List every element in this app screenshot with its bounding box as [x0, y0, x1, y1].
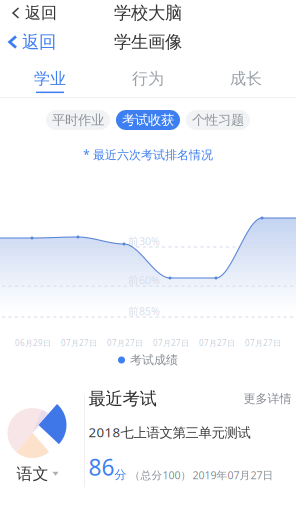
staticText: 07月27日 — [61, 338, 97, 348]
staticText: 学校大脑 — [114, 2, 182, 24]
staticText: 成长 — [230, 69, 262, 89]
staticText: * 最近六次考试排名情况 — [83, 146, 213, 162]
staticText: 平时作业 — [52, 112, 104, 128]
button[interactable]: 学业 — [1, 58, 99, 97]
staticText: 返回 — [22, 31, 56, 53]
staticText: 语文 — [16, 464, 48, 484]
staticText: 06月29日 — [15, 338, 51, 348]
staticText: 前85% — [128, 304, 160, 318]
staticText: 分 — [114, 467, 126, 482]
staticText: 前30% — [128, 234, 160, 248]
staticText: 个性习题 — [192, 112, 244, 128]
staticText: 考试成绩 — [130, 353, 178, 367]
staticText: 2019年07月27日 — [192, 468, 273, 482]
staticText: 学生画像 — [114, 31, 182, 53]
staticText: 86 — [88, 452, 114, 482]
staticText: 2018七上语文第三单元测试 — [88, 423, 250, 441]
button[interactable]: 行为 — [99, 58, 197, 97]
staticText: 更多详情 — [243, 391, 291, 406]
staticText: 最近考试 — [88, 388, 156, 409]
staticText: 前60% — [128, 273, 160, 287]
staticText: 07月27日 — [199, 338, 235, 348]
staticText: 07月27日 — [107, 338, 143, 348]
button[interactable]: 更多详情 — [243, 391, 296, 406]
button[interactable]: 语文 — [16, 464, 58, 484]
button[interactable]: 返回 — [0, 0, 57, 26]
staticText: 07月27日 — [153, 338, 189, 348]
staticText: 行为 — [132, 69, 164, 89]
button[interactable]: 个性习题 — [186, 110, 250, 130]
staticText: 返回 — [25, 3, 57, 23]
staticText: 考试收获 — [122, 112, 174, 128]
button[interactable]: 成长 — [197, 58, 295, 97]
button[interactable]: 平时作业 — [46, 110, 110, 130]
staticText: 07月27日 — [245, 338, 281, 348]
staticText: 学业 — [34, 69, 66, 89]
button[interactable]: 考试收获 — [116, 110, 180, 130]
staticText: （总分100） — [129, 468, 191, 482]
button[interactable]: 返回 — [0, 26, 56, 58]
